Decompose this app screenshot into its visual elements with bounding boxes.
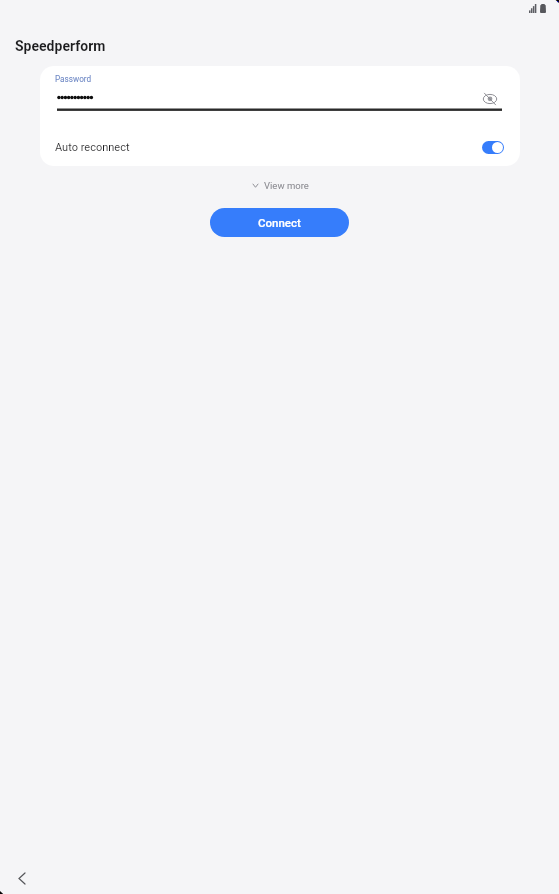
button[interactable]: Auto reconnect: [40, 135, 520, 159]
staticText: Password: [55, 74, 92, 84]
button[interactable]: Back: [10, 866, 34, 890]
staticText: Speedperform: [15, 38, 106, 54]
button[interactable]: Connect: [210, 208, 349, 237]
staticText: Connect: [258, 216, 301, 229]
button[interactable]: View more: [247, 178, 313, 193]
button[interactable]: Password field: [57, 88, 502, 108]
staticText: Auto reconnect: [55, 141, 130, 154]
button[interactable]: Hide password: [479, 91, 500, 107]
staticText: View more: [264, 180, 309, 191]
